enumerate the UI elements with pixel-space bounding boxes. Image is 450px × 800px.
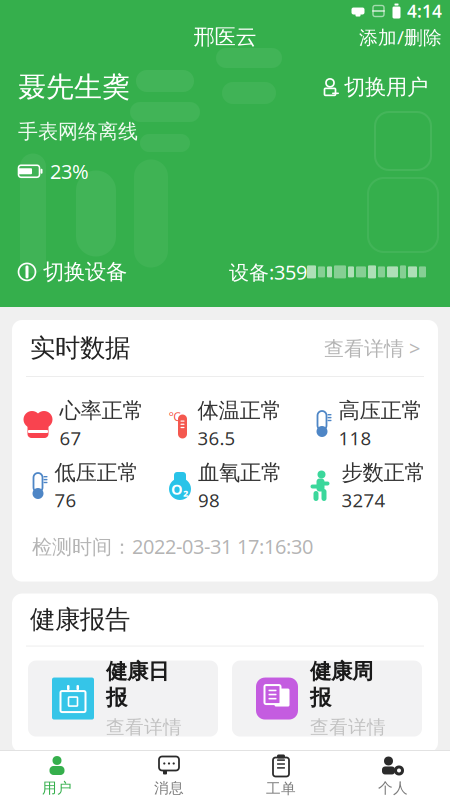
staticText: 低压正常: [54, 459, 138, 486]
button[interactable]: 工单: [225, 751, 337, 800]
staticText: 健康日报: [106, 658, 169, 711]
button[interactable]: 添加/删除: [351, 19, 450, 55]
staticText: 4:14: [407, 0, 442, 22]
staticText: 添加/删除: [359, 25, 442, 49]
staticText: 体温正常: [197, 397, 281, 424]
staticText: 查看详情: [106, 716, 182, 739]
staticText: 67: [59, 426, 81, 450]
button[interactable]: 个人: [337, 751, 449, 800]
staticText: O₂: [171, 479, 189, 499]
staticText: 消息: [154, 779, 184, 797]
staticText: 3274: [341, 488, 385, 512]
button[interactable]: 实时数据: [12, 320, 438, 376]
staticText: 邢医云: [193, 24, 256, 50]
button[interactable]: 切换设备: [18, 255, 127, 289]
staticText: 98: [198, 488, 220, 512]
staticText: 76: [54, 488, 76, 512]
staticText: 切换设备: [43, 259, 127, 285]
button[interactable]: 消息: [113, 751, 225, 800]
staticText: 118: [338, 426, 371, 450]
staticText: 用户: [42, 779, 72, 797]
staticText: 工单: [266, 779, 296, 797]
staticText: 聂先生䶮: [18, 70, 130, 104]
button[interactable]: 切换用户: [317, 70, 432, 104]
staticText: 36.5: [197, 426, 235, 450]
button[interactable]: 健康周报: [232, 661, 422, 737]
staticText: 个人: [378, 779, 408, 797]
staticText: 步数正常: [341, 459, 425, 486]
staticText: 健康报告: [30, 604, 130, 635]
staticText: 23%: [50, 158, 89, 185]
button[interactable]: 用户: [1, 751, 113, 800]
staticText: 健康周报: [310, 658, 373, 711]
staticText: 查看详情: [310, 716, 386, 739]
staticText: 心率正常: [59, 397, 143, 424]
staticText: 血氧正常: [198, 459, 282, 486]
staticText: 切换用户: [344, 74, 428, 100]
staticText: 实时数据: [30, 332, 130, 363]
staticText: 查看详情 >: [324, 335, 420, 361]
staticText: 设备:359: [229, 259, 307, 285]
staticText: 高压正常: [338, 397, 422, 424]
staticText: 手表网络离线: [18, 119, 138, 144]
staticText: 检测时间：2022-03-31 17:16:30: [32, 533, 313, 560]
staticText: ℃: [168, 408, 180, 424]
button[interactable]: 健康日报: [28, 661, 218, 737]
